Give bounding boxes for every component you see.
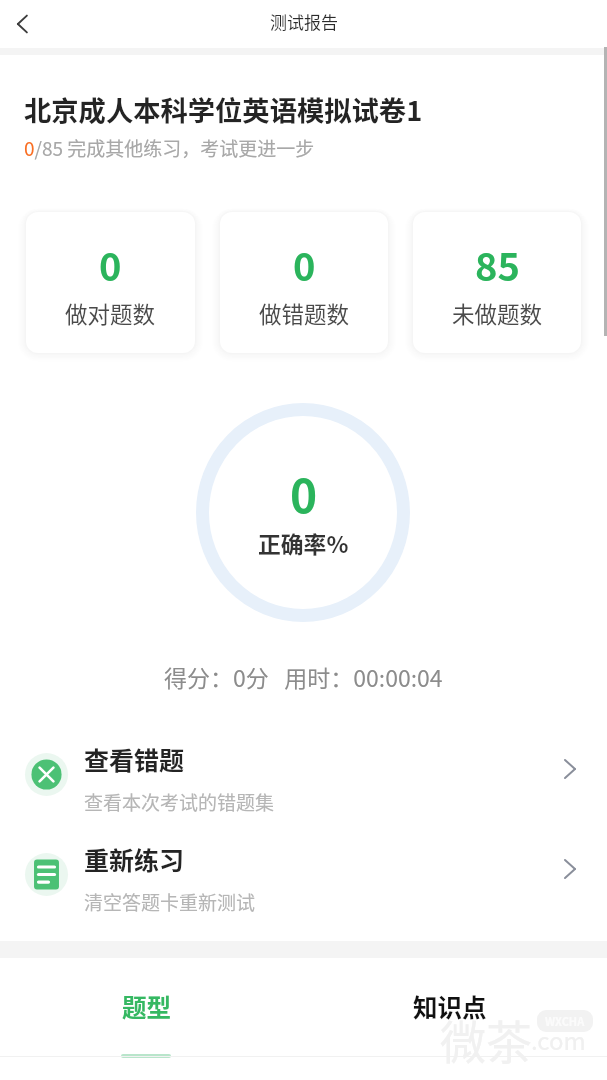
- staticText: 查看本次考试的错题集: [84, 788, 275, 816]
- staticText: 重新练习: [84, 841, 185, 877]
- button[interactable]: 重新练习: [0, 825, 607, 925]
- staticText: 知识点: [413, 989, 487, 1024]
- button[interactable]: Back: [0, 0, 48, 48]
- staticText: 题型: [122, 989, 171, 1024]
- staticText: 85: [475, 237, 520, 292]
- staticText: WXCHA: [545, 1013, 585, 1029]
- staticText: 查看错题: [84, 741, 185, 777]
- button[interactable]: 知识点: [300, 958, 600, 1080]
- staticText: 未做题数: [452, 297, 543, 330]
- staticText: 微茶: [440, 1006, 532, 1073]
- staticText: 0: [99, 237, 122, 292]
- button[interactable]: 查看错题: [0, 725, 607, 825]
- staticText: .com: [531, 1022, 586, 1057]
- staticText: 做错题数: [259, 297, 350, 330]
- staticText: 得分：0分 用时：00:00:04: [164, 660, 443, 693]
- staticText: 北京成人本科学位英语模拟试卷1: [24, 89, 423, 129]
- button[interactable]: 85: [413, 212, 581, 353]
- staticText: 0: [293, 237, 316, 292]
- staticText: 0/85 完成其他练习，考试更进一步: [24, 134, 315, 162]
- button[interactable]: 题型: [0, 958, 300, 1080]
- staticText: 0: [290, 460, 318, 527]
- staticText: 测试报告: [270, 9, 338, 34]
- button[interactable]: 0: [26, 212, 195, 353]
- button[interactable]: 0: [220, 212, 388, 353]
- staticText: 做对题数: [65, 297, 156, 330]
- staticText: 正确率%: [258, 527, 349, 560]
- staticText: 清空答题卡重新测试: [84, 888, 256, 916]
